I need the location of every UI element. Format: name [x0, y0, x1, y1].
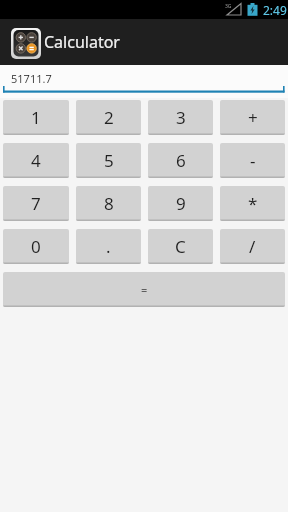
staticText: 3G	[225, 3, 232, 10]
staticText: +	[248, 106, 258, 129]
staticText: 1	[31, 106, 41, 129]
button[interactable]: 2	[76, 100, 141, 135]
button[interactable]: 8	[76, 186, 141, 221]
staticText: =	[141, 282, 148, 297]
button[interactable]: C	[148, 229, 213, 264]
staticText: 3	[176, 106, 186, 129]
button[interactable]: 51711.7	[0, 65, 288, 98]
button[interactable]: .	[76, 229, 141, 264]
staticText: 4	[31, 149, 41, 172]
staticText: 7	[31, 192, 41, 215]
button[interactable]: -	[220, 143, 285, 178]
button[interactable]: 3	[148, 100, 213, 135]
button[interactable]: 5	[76, 143, 141, 178]
staticText: 5	[104, 149, 114, 172]
staticText: 6	[176, 149, 186, 172]
staticText: *	[248, 192, 258, 215]
button[interactable]: 4	[3, 143, 69, 178]
staticText: 2	[104, 106, 114, 129]
staticText: 2:49	[263, 2, 287, 18]
staticText: 0	[31, 235, 41, 258]
staticText: C	[175, 235, 186, 258]
button[interactable]: 7	[3, 186, 69, 221]
button[interactable]: 6	[148, 143, 213, 178]
staticText: .	[106, 235, 111, 258]
staticText: 9	[176, 192, 186, 215]
button[interactable]: =	[3, 272, 285, 307]
button[interactable]: +	[220, 100, 285, 135]
staticText: /	[249, 235, 256, 258]
button[interactable]: 9	[148, 186, 213, 221]
staticText: 8	[104, 192, 114, 215]
staticText: Calculator	[44, 31, 120, 53]
staticText: -	[250, 149, 256, 172]
button[interactable]: 1	[3, 100, 69, 135]
button[interactable]: *	[220, 186, 285, 221]
staticText: 51711.7	[11, 71, 52, 86]
button[interactable]: 0	[3, 229, 69, 264]
button[interactable]: /	[220, 229, 285, 264]
